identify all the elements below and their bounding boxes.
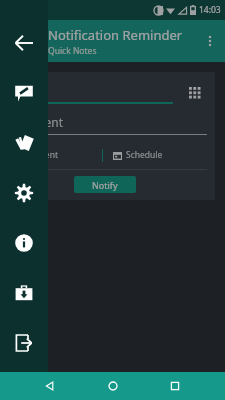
button[interactable]: Apps [183, 81, 207, 105]
button[interactable]: Persistent [18, 145, 102, 165]
staticText: Notification Reminder [48, 26, 183, 44]
staticText: Notify [92, 179, 118, 191]
button[interactable]: Schedule [103, 145, 207, 165]
staticText: Quick Notes [48, 45, 97, 57]
staticText: Schedule [126, 149, 163, 161]
staticText: Persistent [18, 149, 58, 161]
button[interactable]: Settings [7, 176, 41, 210]
button[interactable]: Home [100, 373, 126, 399]
button[interactable]: Feedback [7, 76, 41, 110]
button[interactable]: Style [7, 126, 41, 160]
button[interactable]: Back [7, 26, 41, 60]
button[interactable]: Back [37, 373, 63, 399]
button[interactable]: About [7, 226, 41, 260]
button[interactable]: Backup [7, 276, 41, 310]
staticText: 14:03 [199, 4, 221, 16]
button[interactable]: Recents [162, 373, 188, 399]
button[interactable]: Exit [7, 326, 41, 360]
button[interactable]: Notify [74, 176, 136, 193]
staticText: Content [18, 114, 64, 130]
button[interactable]: More options [195, 26, 225, 56]
staticText: Title [18, 82, 42, 98]
